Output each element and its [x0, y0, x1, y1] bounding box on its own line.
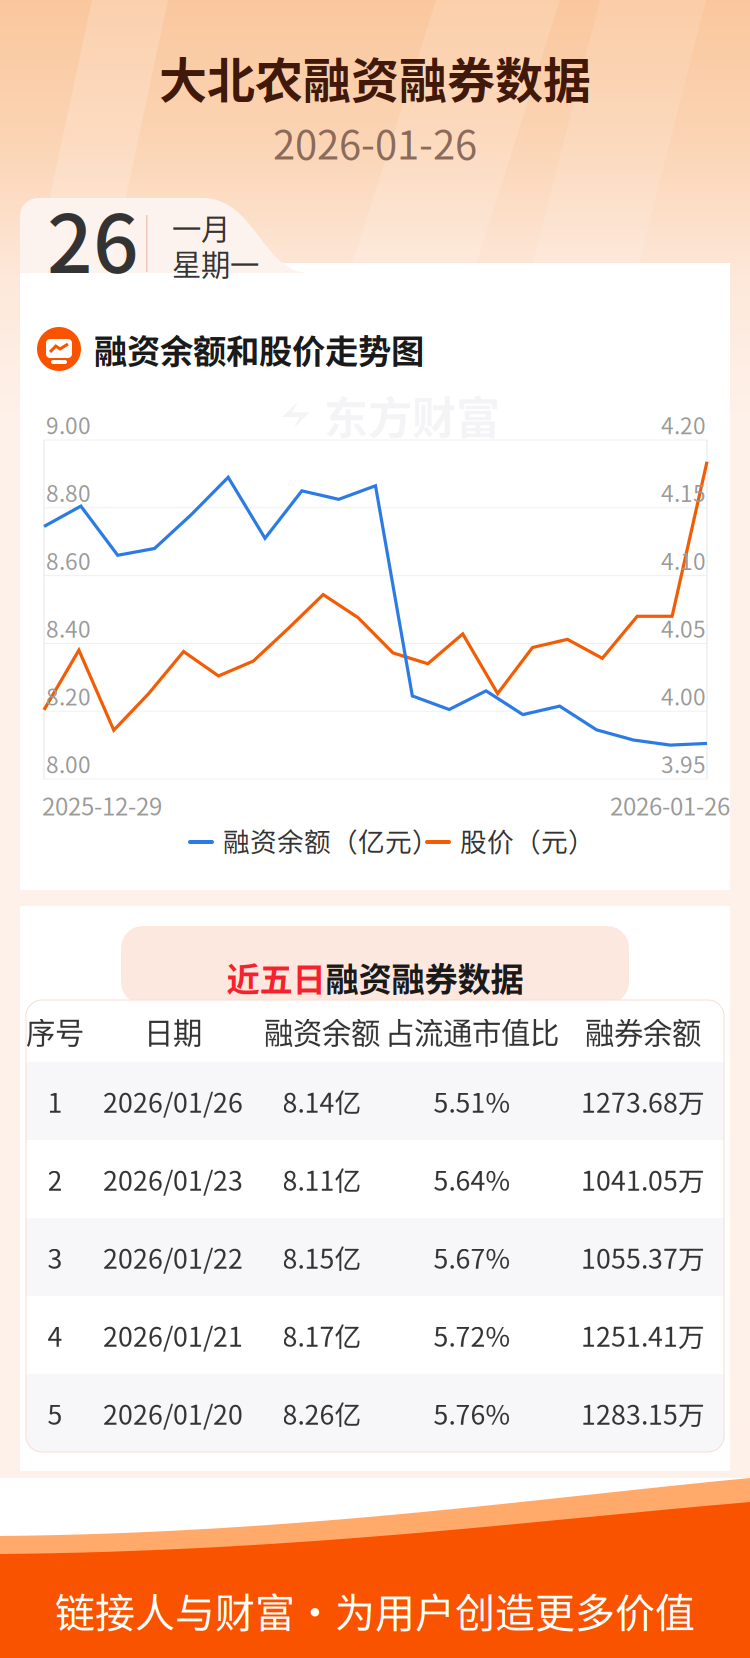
- staticText: 占流通市值比: [385, 1010, 559, 1052]
- staticText: 2: [47, 1160, 62, 1198]
- staticText: 4.00: [661, 679, 706, 712]
- staticText: 5.72%: [433, 1316, 510, 1354]
- staticText: 9.00: [46, 408, 91, 441]
- staticText: 序号: [26, 1010, 84, 1052]
- staticText: 4.20: [661, 408, 706, 441]
- staticText: 8.00: [46, 747, 91, 780]
- staticText: 3.95: [661, 747, 706, 780]
- staticText: 星期一: [172, 242, 259, 284]
- staticText: 1: [47, 1082, 62, 1120]
- staticText: 融资融券数据: [325, 953, 523, 1001]
- staticText: 2026/01/22: [103, 1238, 243, 1276]
- staticText: 2026-01-26: [610, 788, 730, 822]
- staticText: 大北农融资融券数据: [159, 42, 591, 112]
- staticText: 日期: [144, 1010, 202, 1052]
- staticText: 东方财富: [324, 383, 500, 447]
- staticText: 8.60: [46, 544, 91, 576]
- staticText: 股价（元）: [460, 821, 595, 859]
- staticText: 1055.37万: [581, 1238, 705, 1276]
- staticText: 4.10: [661, 544, 706, 576]
- staticText: 4.15: [661, 476, 706, 509]
- staticText: 8.26亿: [282, 1394, 361, 1432]
- staticText: 4: [47, 1316, 62, 1354]
- staticText: 1041.05万: [581, 1160, 705, 1198]
- staticText: 融券余额: [585, 1010, 701, 1052]
- staticText: 8.40: [46, 611, 91, 644]
- staticText: 一月: [172, 206, 230, 248]
- staticText: 5.51%: [433, 1082, 510, 1120]
- staticText: 融资余额: [264, 1010, 380, 1052]
- staticText: 5.67%: [433, 1238, 510, 1276]
- staticText: 1273.68万: [581, 1082, 705, 1120]
- staticText: 8.80: [46, 476, 91, 509]
- staticText: 8.20: [46, 679, 91, 712]
- staticText: 8.14亿: [282, 1082, 361, 1120]
- staticText: 2026/01/21: [103, 1316, 243, 1354]
- staticText: 2025-12-29: [42, 788, 162, 822]
- staticText: 5: [47, 1394, 62, 1432]
- staticText: 8.17亿: [282, 1316, 361, 1354]
- staticText: 1283.15万: [581, 1394, 705, 1432]
- staticText: 4.05: [661, 611, 706, 644]
- staticText: 8.15亿: [282, 1238, 361, 1276]
- staticText: 链接人与财富·为用户创造更多价值: [55, 1581, 695, 1639]
- staticText: 2026/01/26: [103, 1082, 243, 1120]
- staticText: 融资余额（亿元）: [223, 821, 439, 859]
- staticText: 5.76%: [433, 1394, 510, 1432]
- staticText: 2026-01-26: [273, 113, 477, 171]
- staticText: 融资余额和股价走势图: [94, 325, 424, 373]
- staticText: 5.64%: [433, 1160, 510, 1198]
- staticText: 8.11亿: [282, 1160, 361, 1198]
- staticText: 近五日: [226, 953, 325, 1001]
- staticText: 3: [47, 1238, 62, 1276]
- staticText: 2026/01/20: [103, 1394, 243, 1432]
- staticText: 26: [47, 180, 139, 296]
- staticText: 1251.41万: [581, 1316, 705, 1354]
- staticText: 2026/01/23: [103, 1160, 243, 1198]
